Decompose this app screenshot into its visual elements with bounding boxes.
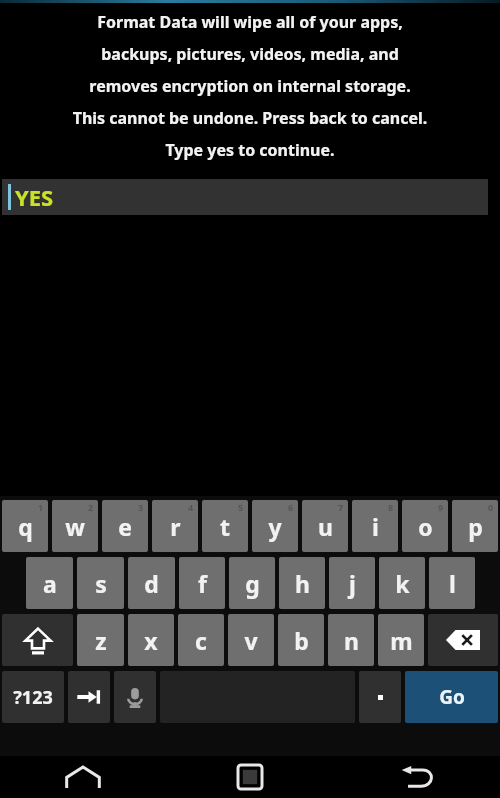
staticText: c bbox=[195, 625, 207, 656]
button[interactable]: Back bbox=[333, 756, 500, 798]
staticText: Format Data will wipe all of your apps, … bbox=[14, 11, 486, 161]
staticText: 1 bbox=[38, 501, 44, 513]
staticText: a bbox=[43, 568, 57, 599]
staticText: 0 bbox=[488, 501, 494, 513]
button[interactable]: z bbox=[77, 614, 124, 666]
staticText: g bbox=[245, 568, 260, 599]
staticText: d bbox=[144, 568, 159, 599]
staticText: p bbox=[468, 511, 483, 542]
button[interactable]: k bbox=[379, 557, 425, 609]
button[interactable]: Shift bbox=[2, 614, 73, 666]
staticText: 4 bbox=[188, 501, 194, 513]
button[interactable]: h bbox=[279, 557, 325, 609]
button[interactable]: i bbox=[352, 500, 398, 552]
button[interactable]: Backspace bbox=[428, 614, 498, 666]
staticText: 9 bbox=[438, 501, 444, 513]
staticText: k bbox=[395, 568, 410, 599]
staticText: e bbox=[118, 511, 132, 542]
button[interactable]: Home bbox=[0, 756, 166, 798]
button[interactable]: Recent apps bbox=[166, 756, 333, 798]
button[interactable]: l bbox=[429, 557, 475, 609]
button[interactable]: a bbox=[26, 557, 73, 609]
staticText: n bbox=[344, 625, 359, 656]
staticText: f bbox=[198, 568, 207, 599]
button[interactable]: v bbox=[228, 614, 274, 666]
staticText: q bbox=[18, 511, 33, 542]
button[interactable]: w bbox=[52, 500, 98, 552]
staticText: l bbox=[449, 568, 456, 599]
button[interactable]: Period bbox=[359, 671, 401, 723]
staticText: y bbox=[268, 511, 282, 542]
staticText: i bbox=[372, 511, 379, 542]
button[interactable]: o bbox=[402, 500, 448, 552]
staticText: 8 bbox=[388, 501, 394, 513]
button[interactable]: d bbox=[128, 557, 175, 609]
staticText: m bbox=[390, 625, 413, 656]
staticText: 3 bbox=[138, 501, 144, 513]
button[interactable]: Voice input bbox=[114, 671, 156, 723]
button[interactable]: c bbox=[178, 614, 224, 666]
staticText: 7 bbox=[338, 501, 344, 513]
staticText: 2 bbox=[88, 501, 94, 513]
staticText: x bbox=[144, 625, 158, 656]
staticText: Go bbox=[439, 684, 465, 710]
staticText: ?123 bbox=[13, 685, 53, 710]
button[interactable]: x bbox=[128, 614, 174, 666]
button[interactable]: f bbox=[179, 557, 225, 609]
button[interactable]: m bbox=[378, 614, 424, 666]
button[interactable]: r bbox=[152, 500, 198, 552]
button[interactable]: g bbox=[229, 557, 275, 609]
staticText: 6 bbox=[288, 501, 294, 513]
staticText: j bbox=[349, 568, 356, 599]
staticText: w bbox=[65, 511, 85, 542]
button[interactable]: Go bbox=[405, 671, 498, 723]
button[interactable]: e bbox=[102, 500, 148, 552]
button[interactable]: j bbox=[329, 557, 375, 609]
button[interactable]: q bbox=[2, 500, 48, 552]
button[interactable]: n bbox=[328, 614, 374, 666]
button[interactable]: t bbox=[202, 500, 248, 552]
staticText: z bbox=[95, 625, 107, 656]
button[interactable]: y bbox=[252, 500, 298, 552]
staticText: YES bbox=[15, 182, 54, 212]
button[interactable]: Symbols bbox=[2, 671, 64, 723]
staticText: h bbox=[295, 568, 310, 599]
staticText: 5 bbox=[238, 501, 244, 513]
staticText: v bbox=[244, 625, 258, 656]
staticText: r bbox=[170, 511, 181, 542]
button[interactable]: s bbox=[77, 557, 124, 609]
button[interactable]: Tab bbox=[68, 671, 110, 723]
button[interactable]: YES bbox=[2, 179, 488, 215]
staticText: s bbox=[95, 568, 107, 599]
staticText: b bbox=[294, 625, 309, 656]
staticText: t bbox=[220, 511, 230, 542]
button[interactable]: b bbox=[278, 614, 324, 666]
button[interactable]: u bbox=[302, 500, 348, 552]
staticText: u bbox=[318, 511, 333, 542]
button[interactable]: p bbox=[452, 500, 498, 552]
staticText: o bbox=[418, 511, 433, 542]
